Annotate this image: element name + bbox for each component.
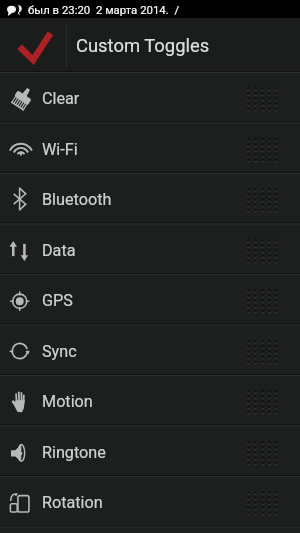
button[interactable]: Rotation bbox=[0, 476, 300, 527]
staticText: Sync bbox=[42, 342, 77, 361]
staticText: Ringtone bbox=[42, 443, 106, 462]
staticText: Rotation bbox=[42, 493, 103, 512]
button[interactable]: Bluetooth bbox=[0, 173, 300, 224]
button[interactable]: Data bbox=[0, 224, 300, 275]
button[interactable]: Motion bbox=[0, 375, 300, 426]
staticText: Wi-Fi bbox=[42, 140, 78, 159]
button[interactable]: GPS bbox=[0, 274, 300, 325]
button[interactable]: Ringtone bbox=[0, 426, 300, 477]
button[interactable]: App logo, up bbox=[0, 18, 66, 72]
staticText: был в 23:20 2 марта 2014. / bbox=[28, 3, 180, 16]
staticText: Bluetooth bbox=[42, 190, 112, 209]
staticText: GPS bbox=[42, 291, 73, 310]
button[interactable]: Clear bbox=[0, 72, 300, 123]
staticText: Clear bbox=[42, 89, 80, 108]
staticText: Data bbox=[42, 241, 76, 260]
button[interactable]: Wi-Fi bbox=[0, 123, 300, 174]
button[interactable]: Sync bbox=[0, 325, 300, 376]
staticText: Motion bbox=[42, 392, 93, 411]
staticText: Custom Toggles bbox=[76, 35, 210, 57]
